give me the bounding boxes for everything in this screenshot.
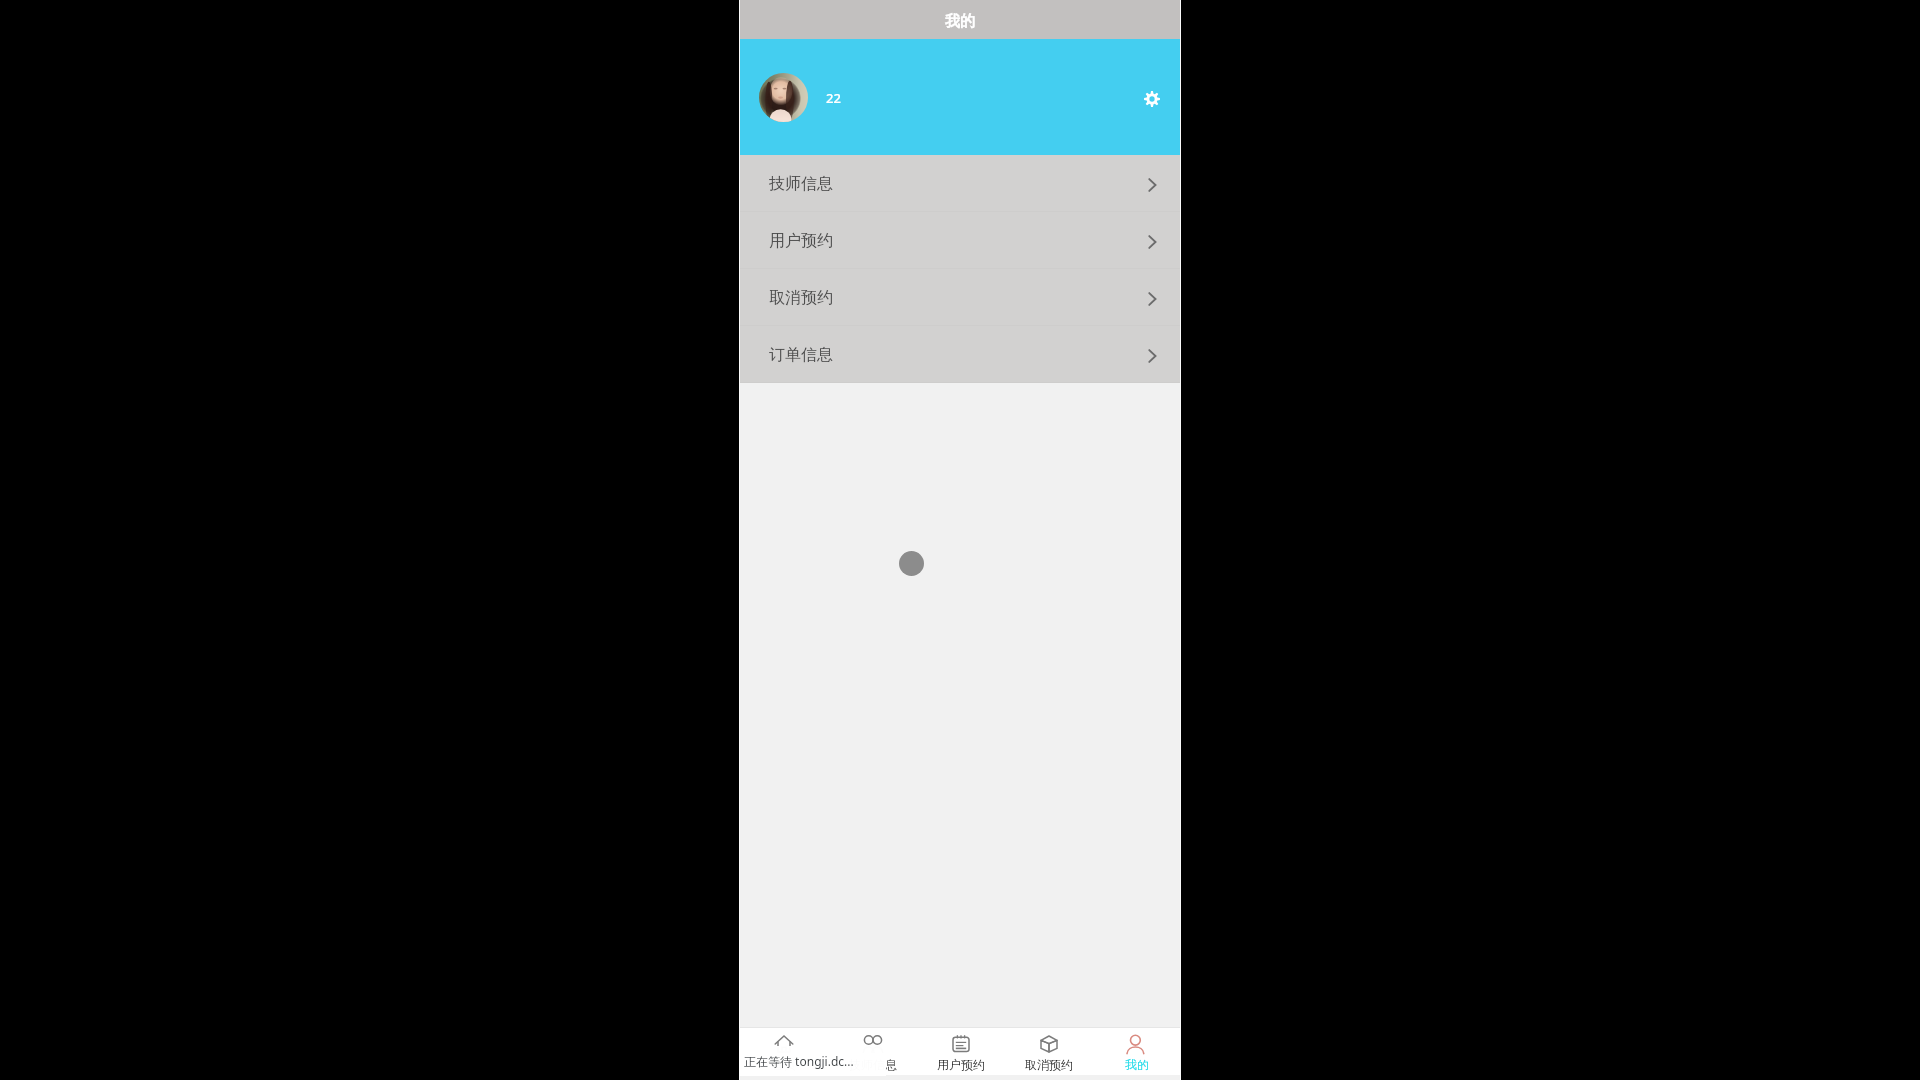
button[interactable]: 取消预约	[1005, 1028, 1093, 1075]
staticText: 用户预约	[937, 1057, 985, 1072]
staticText: 订单信息	[769, 345, 833, 365]
button[interactable]	[759, 73, 808, 122]
button[interactable]: 用户预约	[917, 1028, 1005, 1075]
button[interactable]: 订单信息	[739, 326, 1181, 383]
button[interactable]: 首页	[739, 1028, 828, 1075]
staticText: 我的	[945, 12, 975, 31]
staticText: 22	[826, 89, 841, 107]
staticText: 首页	[772, 1057, 796, 1072]
button[interactable]: 我的	[1093, 1028, 1181, 1075]
button[interactable]: 技师信息	[739, 155, 1181, 212]
button[interactable]: 用户预约	[739, 212, 1181, 269]
staticText: 我的	[1125, 1057, 1149, 1072]
button[interactable]: 技师信息	[828, 1028, 917, 1075]
staticText: 技师信息	[769, 174, 833, 194]
staticText: 取消预约	[769, 288, 833, 308]
staticText: 取消预约	[1025, 1057, 1073, 1072]
button[interactable]: Settings	[1138, 85, 1166, 113]
staticText: 技师信息	[849, 1057, 897, 1072]
staticText: 用户预约	[769, 231, 833, 251]
staticText: 正在等待 tongji.dc...	[744, 1053, 854, 1069]
button[interactable]: 取消预约	[739, 269, 1181, 326]
